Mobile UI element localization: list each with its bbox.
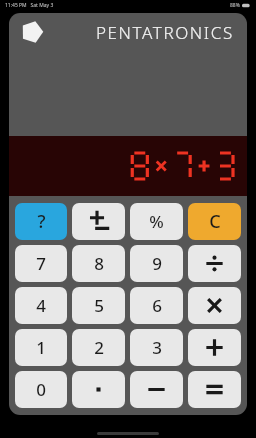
button[interactable]: Decimal point [72,371,125,408]
button[interactable]: 0 [15,371,67,408]
staticText: 2 [94,336,104,359]
staticText: PENTATRONICS [96,21,234,44]
staticText: 9 [152,252,162,275]
staticText: 1 [36,336,46,359]
staticText: 8 [94,252,104,275]
button[interactable]: 3 [130,329,183,366]
button[interactable]: Plus minus [72,203,125,240]
staticText: 5 [94,294,104,317]
button[interactable]: Plus [188,329,241,366]
button[interactable]: Help [15,203,67,240]
button[interactable]: 7 [15,245,67,282]
staticText: 4 [36,294,46,317]
button[interactable]: 4 [15,287,67,324]
button[interactable]: 9 [130,245,183,282]
staticText: 0 [36,378,46,401]
staticText: 7 [36,252,46,275]
button[interactable]: Minus [130,371,183,408]
staticText: % [149,210,164,233]
staticText: 3 [152,336,162,359]
button[interactable]: Percent [130,203,183,240]
staticText: ? [37,209,46,234]
staticText: C [209,209,221,234]
button[interactable]: Clear [188,203,241,240]
staticText: 88% [230,2,240,9]
button[interactable]: 2 [72,329,125,366]
button[interactable]: Equals [188,371,241,408]
button[interactable]: Multiply [188,287,241,324]
button[interactable]: 8 [72,245,125,282]
staticText: 11:45 PM Sat May 3 [5,2,54,9]
button[interactable]: 5 [72,287,125,324]
staticText: 6 [152,294,162,317]
button[interactable]: 1 [15,329,67,366]
button[interactable]: 6 [130,287,183,324]
button[interactable]: Divide [188,245,241,282]
